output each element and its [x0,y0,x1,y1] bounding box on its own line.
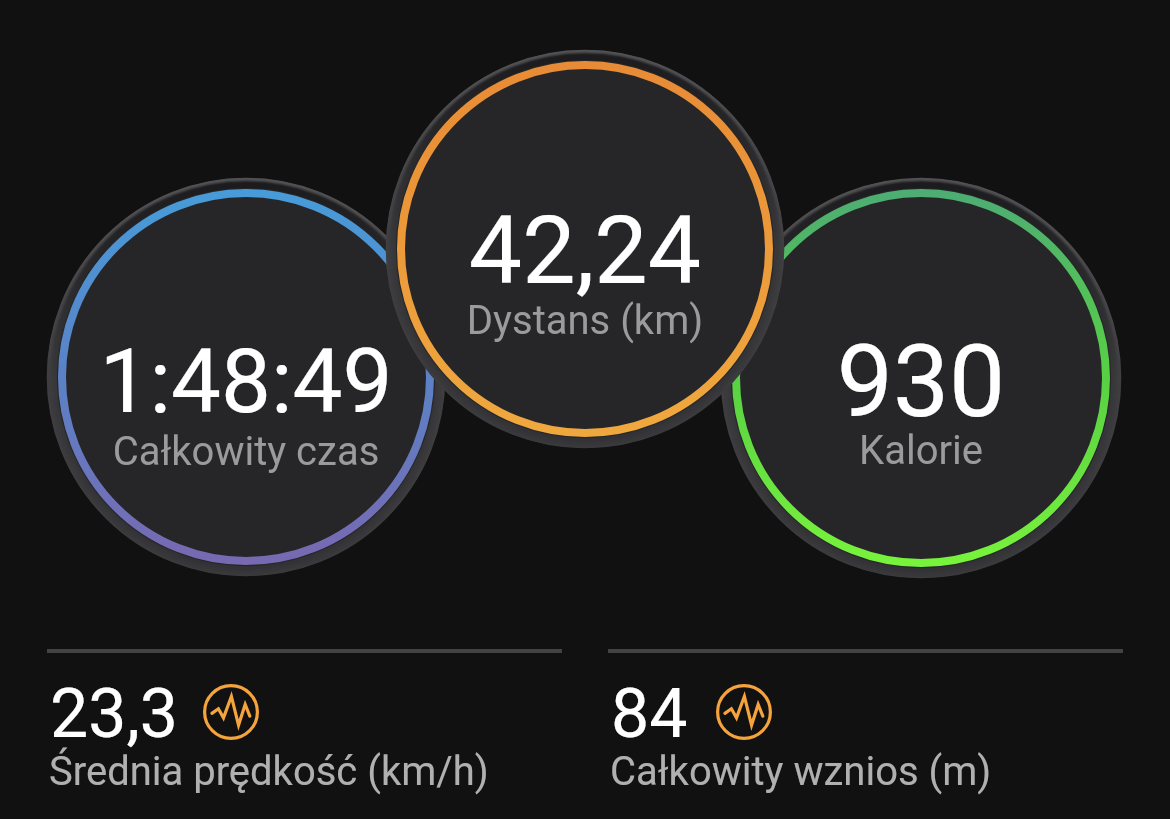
staticText: Kalorie [721,427,1121,474]
staticText: 1:48:49 [47,329,445,433]
staticText: Średnia prędkość (km/h) [49,748,489,795]
staticText: Całkowity czas [47,428,445,475]
other: Activity trend [203,684,259,740]
staticText: 84 [611,674,688,754]
staticText: 42,24 [386,195,784,306]
button[interactable]: 42,24 [386,50,784,448]
staticText: Całkowity wznios (m) [610,748,992,795]
staticText: 23,3 [50,674,179,754]
button[interactable]: 23,3 [47,649,562,819]
button[interactable]: 84 [608,649,1123,819]
button[interactable]: 1:48:49 [47,178,445,576]
staticText: 930 [721,323,1121,440]
staticText: Dystans (km) [386,297,784,344]
other: Activity trend [716,684,772,740]
button[interactable]: 930 [721,178,1121,578]
